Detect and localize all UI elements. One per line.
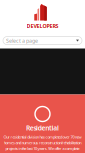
staticText: projects in the last 10 years. We offer … — [5, 146, 80, 151]
staticText: homes and numerous reconstruction/rehabi… — [4, 140, 81, 145]
staticText: Select a page — [6, 37, 38, 44]
button[interactable]: Select a page — [3, 37, 82, 45]
staticText: Residential — [26, 123, 59, 132]
staticText: DEVELOPERS — [26, 22, 58, 30]
staticText: Our residential division has completed o… — [3, 134, 82, 140]
